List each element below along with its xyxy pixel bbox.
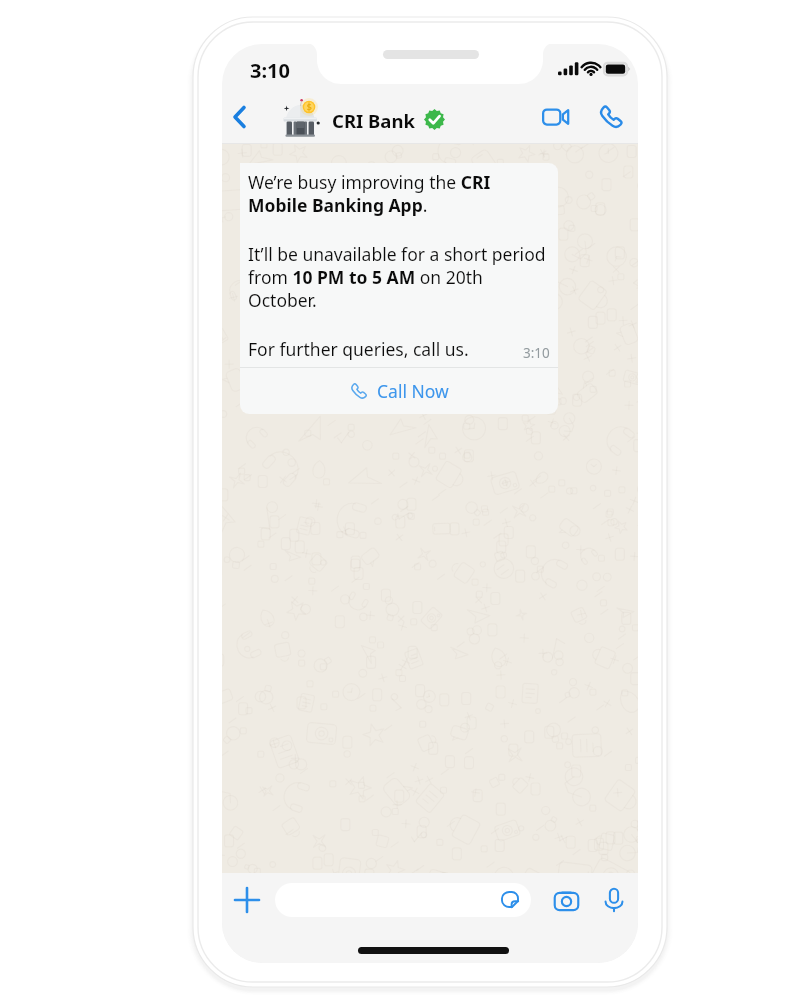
button[interactable]: Camera (546, 880, 586, 920)
button[interactable]: Attach (227, 880, 267, 920)
button[interactable]: Call Now (240, 368, 558, 414)
staticText: 3:10 (250, 57, 290, 84)
staticText: It’ll be unavailable for a short period … (248, 242, 550, 313)
button[interactable]: CRI Bank (274, 90, 454, 144)
button[interactable]: Back (222, 90, 258, 144)
staticText: Call Now (377, 379, 449, 403)
staticText: We’re busy improving the CRI Mobile Bank… (248, 170, 550, 218)
button[interactable]: Voice message (594, 880, 634, 920)
staticText: For further queries, call us. (248, 337, 469, 361)
button[interactable]: Voice call (584, 90, 636, 144)
staticText: CRI Bank (332, 108, 415, 133)
button[interactable] (275, 883, 531, 917)
button[interactable]: Video call (530, 90, 582, 144)
staticText: 3:10 (523, 344, 550, 362)
